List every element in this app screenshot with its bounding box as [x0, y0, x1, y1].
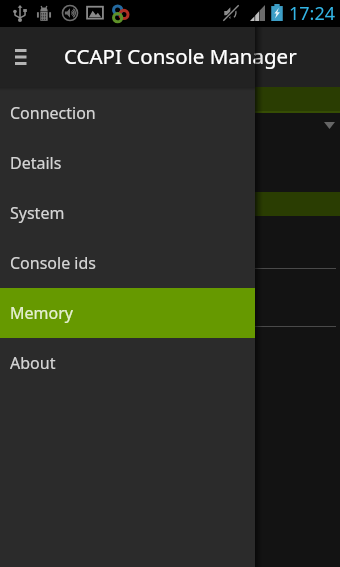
button[interactable]: System [0, 188, 255, 238]
staticText: 17:24 [289, 1, 336, 26]
staticText: CCAPI Console Manager [64, 42, 297, 70]
button[interactable]: Details [0, 138, 255, 188]
button[interactable]: Open navigation drawer [0, 27, 52, 87]
button[interactable]: Memory [0, 288, 255, 338]
button[interactable]: Select console [306, 113, 340, 147]
button[interactable]: Connection [0, 88, 255, 138]
staticText: About [10, 352, 56, 374]
staticText: Memory [10, 302, 73, 324]
button[interactable]: About [0, 338, 255, 388]
staticText: System [10, 202, 65, 224]
button[interactable]: Console ids [0, 238, 255, 288]
staticText: Console ids [10, 252, 96, 274]
staticText: Connection [10, 102, 96, 124]
staticText: Details [10, 152, 62, 174]
